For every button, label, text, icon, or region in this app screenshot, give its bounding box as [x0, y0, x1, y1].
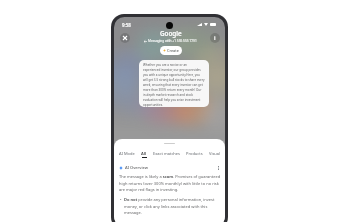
staticText: i	[214, 34, 216, 42]
staticText: 9:58	[122, 22, 131, 28]
staticText: •	[120, 197, 122, 202]
staticText: The message is likely a scam. Promises o…	[119, 174, 221, 192]
staticText: Exact matches	[153, 151, 180, 156]
button[interactable]: Close	[120, 33, 130, 43]
staticText: Visual	[209, 151, 221, 156]
staticText: Products	[186, 151, 203, 156]
staticText: Messaging with +1 555 555 7791	[148, 39, 197, 43]
button[interactable]: Exact matches	[153, 151, 180, 156]
button[interactable]: AI Mode	[119, 151, 135, 156]
staticText: Do not provide any personal information,…	[124, 197, 221, 215]
staticText: AI Mode	[119, 151, 135, 156]
staticText: AI Overview	[125, 165, 148, 170]
button[interactable]: All	[141, 151, 147, 158]
staticText: Google	[160, 29, 182, 38]
staticText: Whether you are a novice or an experienc…	[143, 63, 205, 107]
button[interactable]: Products	[186, 151, 203, 156]
staticText: All	[141, 151, 147, 156]
button[interactable]: Info	[210, 33, 220, 43]
button[interactable]: More options	[216, 165, 221, 170]
button[interactable]: Create	[160, 46, 182, 55]
staticText: Create	[167, 48, 179, 53]
button[interactable]: Visual	[209, 151, 221, 156]
